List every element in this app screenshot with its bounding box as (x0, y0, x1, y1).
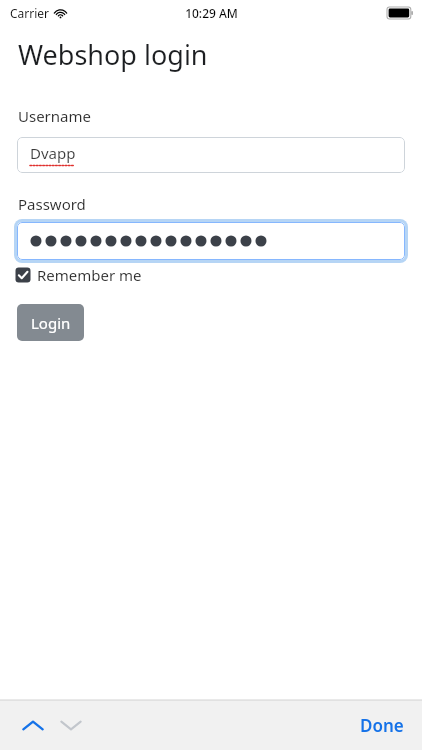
staticText: Password (18, 194, 86, 214)
button[interactable] (14, 219, 408, 263)
button[interactable]: Dvapp (17, 137, 405, 173)
staticText: Username (18, 106, 91, 126)
staticText: 10:29 AM (185, 5, 238, 21)
staticText: Done (360, 714, 404, 737)
staticText: Remember me (37, 265, 142, 285)
button[interactable]: Done (360, 714, 404, 737)
staticText: Login (31, 313, 71, 333)
staticText: Carrier (10, 5, 50, 21)
staticText: Webshop login (18, 36, 208, 73)
staticText: Dvapp (30, 143, 76, 163)
button[interactable]: Previous field (16, 708, 50, 742)
button[interactable]: Next field (54, 708, 88, 742)
button[interactable]: Remember me (15, 265, 142, 285)
button[interactable]: Login (17, 304, 84, 341)
